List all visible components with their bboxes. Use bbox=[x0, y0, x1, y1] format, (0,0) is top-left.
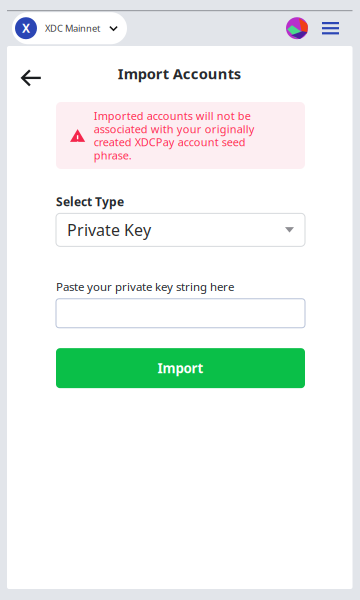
staticText: Paste your private key string here bbox=[56, 279, 234, 294]
staticText: Private Key bbox=[67, 219, 151, 241]
button[interactable]: X bbox=[12, 12, 127, 44]
button[interactable]: Back bbox=[7, 46, 54, 98]
staticText: Import bbox=[157, 359, 203, 377]
button[interactable]: Menu bbox=[308, 14, 342, 42]
staticText: Import Accounts bbox=[118, 63, 241, 83]
button[interactable]: Import bbox=[56, 348, 305, 388]
button[interactable]: Private Key bbox=[56, 213, 305, 246]
staticText: Imported accounts will not be associated… bbox=[94, 109, 255, 162]
staticText: X bbox=[22, 20, 30, 36]
button[interactable]: Account bbox=[286, 17, 308, 39]
staticText: Select Type bbox=[56, 193, 124, 210]
staticText: XDC Mainnet bbox=[45, 22, 100, 34]
